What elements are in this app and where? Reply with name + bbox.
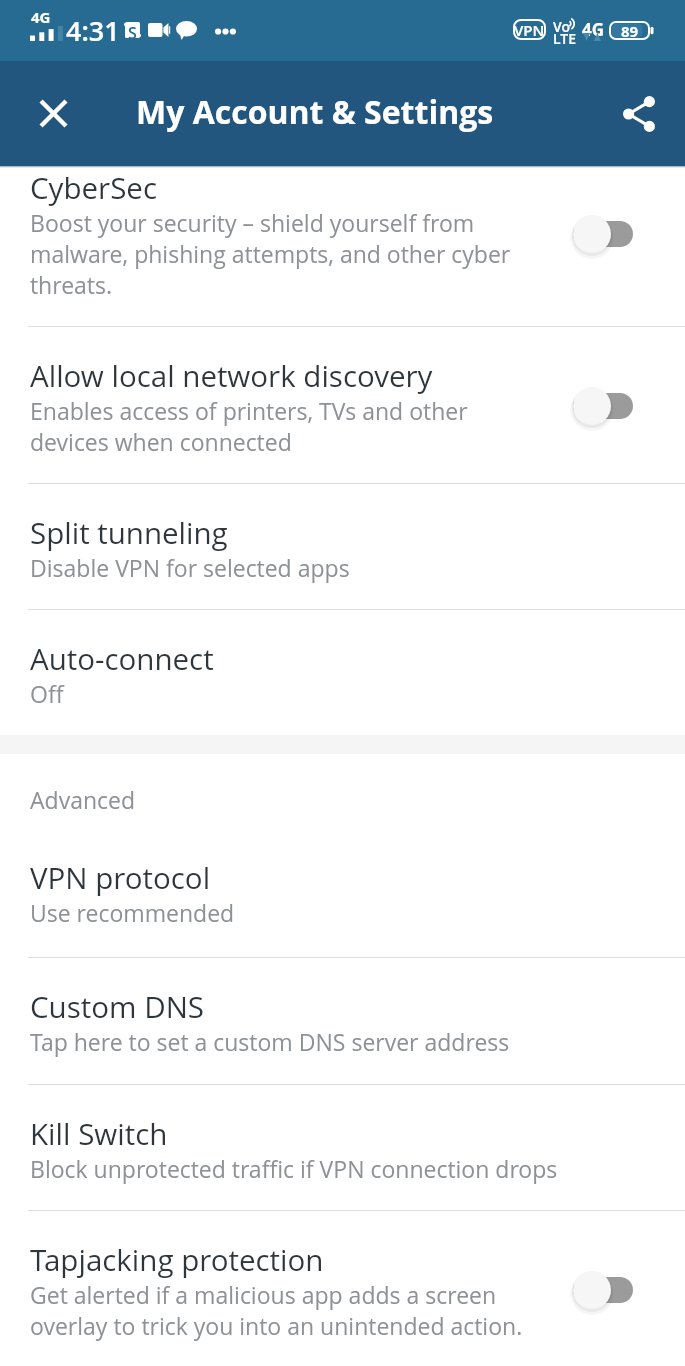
button[interactable]: Advanced — [0, 754, 685, 815]
button[interactable]: VPN protocol — [0, 815, 685, 957]
staticText: 4G — [31, 7, 51, 27]
staticText: Enables access of printers, TVs and othe… — [30, 395, 540, 457]
staticText: 4:31 — [66, 12, 120, 49]
staticText: Auto-connect — [30, 638, 214, 678]
staticText: Use recommended — [30, 897, 235, 928]
staticText: LTE — [553, 29, 577, 48]
staticText: VPN protocol — [30, 857, 211, 897]
button[interactable]: Toggle off — [571, 212, 633, 256]
button[interactable]: Split tunneling — [0, 484, 685, 609]
staticText: Allow local network discovery — [30, 355, 433, 395]
button[interactable]: CyberSec — [0, 167, 685, 326]
staticText: My Account & Settings — [136, 90, 494, 134]
staticText: Advanced — [30, 784, 136, 815]
staticText: VPN — [514, 20, 545, 40]
staticText: Tapjacking protection — [30, 1239, 324, 1279]
staticText: 4G — [582, 18, 605, 41]
button[interactable]: Tapjacking protection — [0, 1211, 685, 1366]
staticText: CyberSec — [30, 167, 157, 207]
button[interactable]: Toggle off — [571, 384, 633, 428]
staticText: Block unprotected traffic if VPN connect… — [30, 1153, 558, 1184]
button[interactable]: Close — [12, 61, 94, 166]
staticText: Boost your security – shield yourself fr… — [30, 207, 540, 300]
staticText: Split tunneling — [30, 512, 228, 552]
staticText: Custom DNS — [30, 986, 205, 1026]
staticText: Tap here to set a custom DNS server addr… — [30, 1026, 510, 1057]
staticText: Kill Switch — [30, 1113, 168, 1153]
staticText: Disable VPN for selected apps — [30, 552, 350, 583]
button[interactable]: Auto-connect — [0, 610, 685, 735]
staticText: Vo — [553, 17, 570, 36]
staticText: Off — [30, 678, 64, 709]
staticText: Get alerted if a malicious app adds a sc… — [30, 1279, 540, 1341]
staticText: 89 — [621, 21, 639, 40]
button[interactable]: Custom DNS — [0, 958, 685, 1084]
staticText: S — [128, 22, 137, 40]
button[interactable]: Toggle off — [571, 1268, 633, 1312]
button[interactable]: Allow local network discovery — [0, 327, 685, 483]
button[interactable]: Share — [592, 61, 685, 166]
button[interactable]: Kill Switch — [0, 1085, 685, 1210]
